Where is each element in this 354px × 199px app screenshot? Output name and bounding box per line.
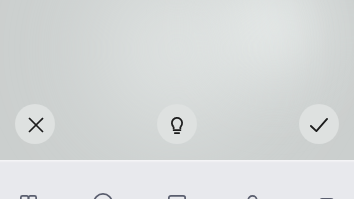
button[interactable]: Dashboard	[18, 195, 38, 199]
button[interactable]: Profile	[242, 195, 262, 199]
button[interactable]: Confirm	[299, 104, 339, 144]
button[interactable]: More	[316, 195, 336, 199]
button[interactable]: Toggle flash	[157, 104, 197, 144]
button[interactable]: Cards	[167, 195, 187, 199]
button[interactable]: Explore	[93, 195, 113, 199]
button[interactable]: Close	[15, 104, 55, 144]
